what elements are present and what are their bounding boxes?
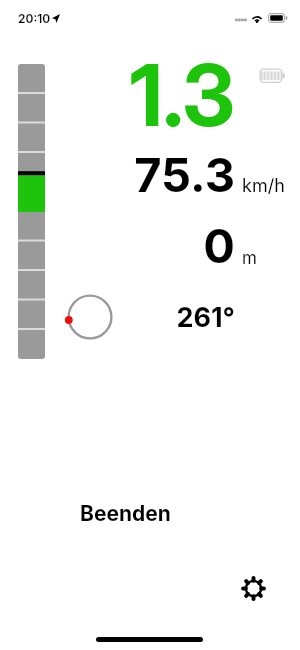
staticText: Beenden bbox=[80, 501, 171, 526]
staticText: km/h bbox=[242, 175, 285, 197]
staticText: 0 bbox=[30, 217, 235, 274]
staticText: 1.3 bbox=[30, 44, 235, 147]
staticText: 261° bbox=[30, 301, 235, 334]
staticText: 75.3 bbox=[30, 146, 235, 203]
button[interactable]: Beenden bbox=[68, 496, 182, 530]
staticText: 20:10 bbox=[18, 11, 51, 26]
button[interactable]: Settings bbox=[238, 573, 268, 603]
staticText: m bbox=[242, 248, 257, 269]
